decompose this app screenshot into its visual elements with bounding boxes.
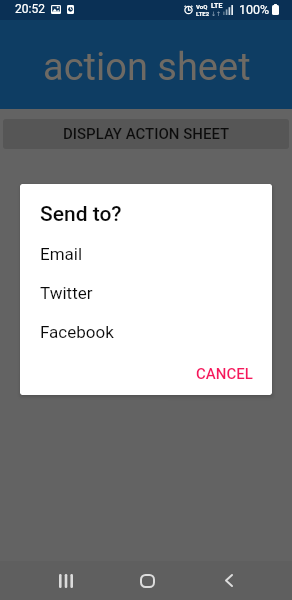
staticText: ↓↑ [211,10,222,17]
staticText: Email [40,244,83,264]
staticText: 20:52 [15,2,45,16]
button[interactable]: Twitter [20,273,272,312]
button[interactable]: Facebook [20,312,272,351]
staticText: Send to? [40,202,122,227]
staticText: LTE [211,2,223,10]
staticText: LTE2 [196,10,210,17]
staticText: 100% [239,2,270,17]
button[interactable]: Send to? [40,202,122,227]
staticText: VoQ [196,3,208,10]
staticText: Facebook [40,322,114,342]
staticText: DISPLAY ACTION SHEET [63,125,230,143]
button[interactable]: Home [120,561,175,600]
button[interactable]: Email [20,234,272,273]
button[interactable]: Back [201,561,256,600]
button[interactable]: DISPLAY ACTION SHEET [3,119,289,149]
staticText: CANCEL [196,365,253,383]
button[interactable]: Recent apps [38,561,93,600]
button[interactable]: CANCEL [188,361,261,387]
staticText: action sheet [43,45,251,90]
staticText: Twitter [40,283,93,303]
